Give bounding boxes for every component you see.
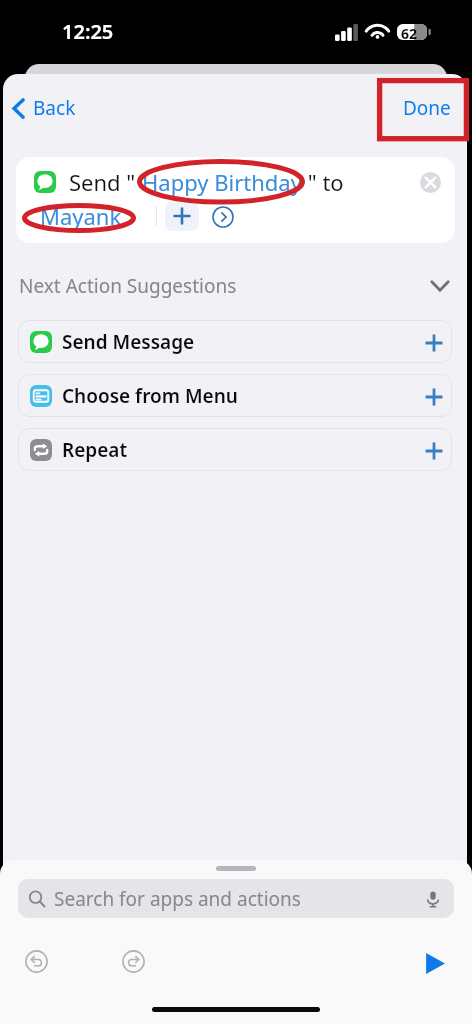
button[interactable]: Repeat [18, 428, 452, 471]
button[interactable]: Remove action [419, 171, 441, 193]
staticText: Mayank [40, 201, 122, 231]
button[interactable]: Done [393, 87, 461, 129]
staticText: " to [302, 167, 344, 197]
staticText: Choose from Menu [62, 383, 238, 409]
button[interactable]: Add Repeat [422, 439, 446, 463]
staticText: Repeat [62, 437, 128, 463]
staticText: Send " [69, 167, 142, 197]
button[interactable]: Add recipient [165, 201, 199, 231]
staticText: 12:25 [62, 18, 114, 45]
button[interactable]: Add Send Message [422, 331, 446, 355]
staticText: Back [33, 95, 76, 121]
staticText: Next Action Suggestions [19, 273, 237, 299]
staticText: Happy Birthday [142, 167, 302, 197]
button[interactable]: Undo [25, 950, 48, 973]
staticText: Search for apps and actions [54, 886, 301, 912]
staticText: Send Message [62, 329, 195, 355]
staticText: Done [403, 95, 451, 121]
staticText: 62 [401, 24, 418, 40]
button[interactable]: Open contact [210, 204, 235, 229]
button[interactable]: Back [3, 89, 86, 127]
button[interactable]: Send Message [18, 320, 452, 363]
button[interactable]: Choose from Menu [18, 374, 452, 417]
button[interactable]: Search for apps and actions [18, 879, 454, 918]
button[interactable]: Add Choose from Menu [422, 385, 446, 409]
button[interactable]: Send " [16, 157, 455, 243]
button[interactable]: Redo [122, 950, 145, 973]
button[interactable]: Next Action Suggestions [3, 273, 467, 299]
button[interactable]: Run shortcut [418, 947, 450, 979]
button[interactable]: Voice search [422, 888, 444, 910]
